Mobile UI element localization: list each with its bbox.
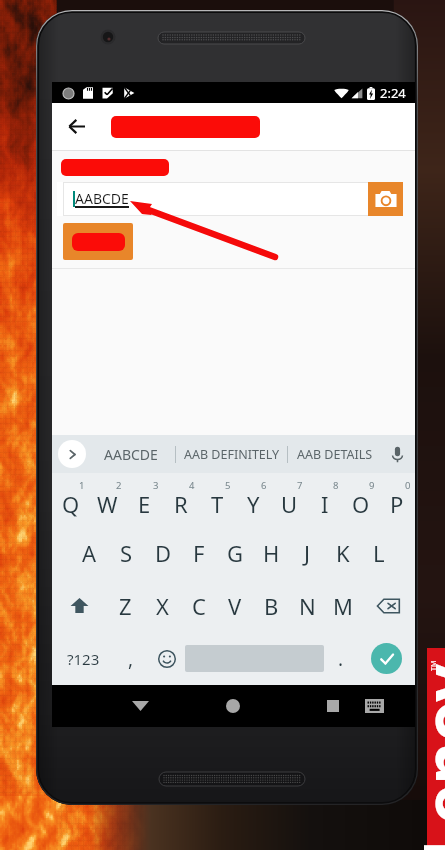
staticText: 0 xyxy=(405,479,411,492)
staticText: M xyxy=(333,591,353,621)
staticText: AAB DEFINITELY xyxy=(184,446,280,463)
button[interactable]: A xyxy=(71,526,108,579)
button[interactable]: L xyxy=(361,526,397,579)
button[interactable]: AABCDE xyxy=(86,435,175,473)
staticText: 7 xyxy=(297,479,303,492)
staticText: P xyxy=(390,489,404,519)
staticText: 8 xyxy=(333,479,339,492)
staticText: G xyxy=(227,538,244,568)
staticText: ?123 xyxy=(67,649,100,669)
button[interactable]: J xyxy=(289,526,325,579)
staticText: 2 xyxy=(116,479,122,492)
button[interactable]: AAB DETAILS xyxy=(288,435,382,473)
staticText: 6 xyxy=(261,479,267,492)
staticText: Y xyxy=(247,489,260,519)
staticText: E xyxy=(138,489,151,519)
staticText: F xyxy=(193,538,205,568)
button[interactable]: U xyxy=(271,473,307,526)
button[interactable]: Text field xyxy=(57,182,368,216)
button[interactable]: N xyxy=(289,579,325,632)
staticText: TM xyxy=(429,660,439,671)
staticText: D xyxy=(155,538,172,568)
button[interactable]: K xyxy=(325,526,361,579)
staticText: AAB DETAILS xyxy=(297,446,373,463)
button[interactable]: Back xyxy=(54,103,99,150)
staticText: 4 xyxy=(189,479,195,492)
button[interactable]: V xyxy=(217,579,253,632)
staticText: 5 xyxy=(225,479,231,492)
staticText: K xyxy=(336,538,350,568)
button[interactable]: Done xyxy=(371,643,402,674)
staticText: X xyxy=(156,591,169,621)
staticText: S xyxy=(120,538,133,568)
staticText: L xyxy=(373,538,385,568)
button[interactable]: B xyxy=(253,579,289,632)
button[interactable]: X xyxy=(144,579,181,632)
staticText: A xyxy=(82,538,97,568)
button[interactable]: M xyxy=(325,579,361,632)
button[interactable]: T xyxy=(199,473,235,526)
button[interactable]: Y xyxy=(235,473,271,526)
staticText: 1 xyxy=(79,479,85,492)
button[interactable]: Emoji xyxy=(148,632,185,685)
staticText: O xyxy=(352,489,370,519)
staticText: J xyxy=(304,538,311,568)
button[interactable]: More suggestions xyxy=(58,440,86,468)
staticText: N xyxy=(299,591,316,621)
staticText: 2:24 xyxy=(380,84,406,102)
button[interactable]: D xyxy=(145,526,181,579)
staticText: Z xyxy=(119,591,132,621)
button[interactable]: Shift xyxy=(52,579,107,632)
staticText: . xyxy=(338,646,344,672)
staticText: U xyxy=(281,489,298,519)
button[interactable]: W xyxy=(89,473,126,526)
button[interactable]: Z xyxy=(107,579,144,632)
button[interactable]: E xyxy=(126,473,163,526)
staticText: I xyxy=(321,489,329,519)
button[interactable]: Switch keyboard xyxy=(352,685,396,727)
button[interactable]: C xyxy=(181,579,217,632)
staticText: Lenovo xyxy=(401,651,445,850)
staticText: Q xyxy=(62,489,80,519)
staticText: 3 xyxy=(153,479,159,492)
staticText: , xyxy=(128,646,134,672)
button[interactable]: G xyxy=(217,526,253,579)
button[interactable]: Take photo xyxy=(368,182,403,216)
button[interactable]: Q xyxy=(52,473,89,526)
staticText: C xyxy=(192,591,206,621)
button[interactable]: I xyxy=(307,473,343,526)
button[interactable]: Backspace xyxy=(361,579,415,632)
button[interactable]: R xyxy=(163,473,199,526)
staticText: W xyxy=(97,489,118,519)
staticText: 9 xyxy=(369,479,375,492)
staticText: T xyxy=(211,489,224,519)
button[interactable]: P xyxy=(379,473,415,526)
button[interactable]: Recents xyxy=(311,685,355,727)
button[interactable]: H xyxy=(253,526,289,579)
button[interactable]: F xyxy=(181,526,217,579)
staticText: B xyxy=(264,591,279,621)
staticText: AABCDE xyxy=(75,189,129,208)
staticText: AABCDE xyxy=(104,445,158,464)
button[interactable]: Home xyxy=(211,685,255,727)
button[interactable]: , xyxy=(114,632,148,685)
button[interactable]: AAB DEFINITELY xyxy=(176,435,287,473)
button[interactable]: Title xyxy=(111,116,260,138)
staticText: V xyxy=(228,591,242,621)
button[interactable]: Submit xyxy=(63,223,133,260)
staticText: R xyxy=(174,489,188,519)
button[interactable]: Hide keyboard xyxy=(118,685,162,727)
button[interactable]: Voice input xyxy=(382,439,412,469)
button[interactable]: S xyxy=(108,526,145,579)
button[interactable]: . xyxy=(324,632,358,685)
staticText: H xyxy=(263,538,280,568)
button[interactable]: ?123 xyxy=(52,632,114,685)
button[interactable]: O xyxy=(343,473,379,526)
